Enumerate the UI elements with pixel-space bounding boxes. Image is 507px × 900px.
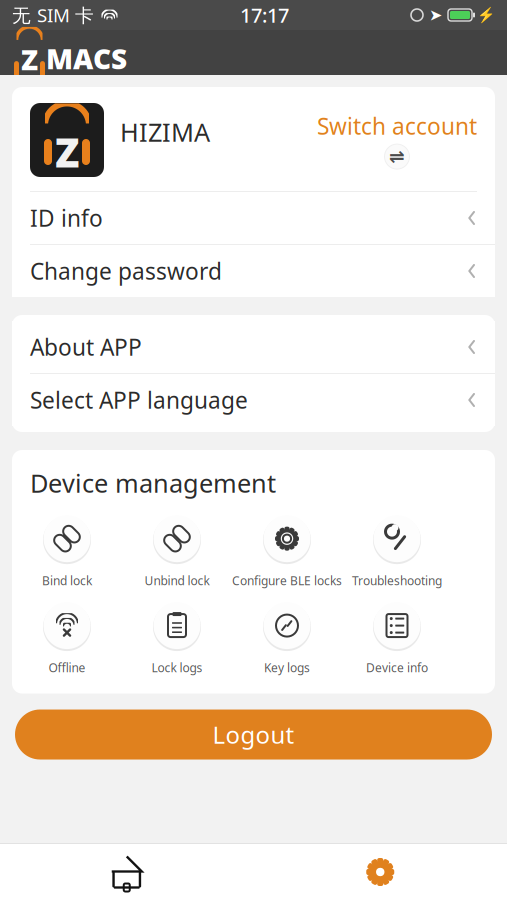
staticText: Logout bbox=[212, 719, 294, 750]
staticText: Key logs bbox=[264, 660, 310, 675]
button[interactable]: Change password bbox=[12, 245, 495, 297]
button[interactable]: Device info bbox=[342, 601, 452, 675]
staticText: Offline bbox=[48, 660, 85, 675]
staticText: Z bbox=[55, 125, 79, 178]
staticText: ➤ bbox=[429, 6, 442, 24]
button[interactable]: Troubleshooting bbox=[342, 514, 452, 588]
staticText: ⇌ bbox=[389, 146, 405, 167]
staticText: About APP bbox=[30, 332, 142, 362]
staticText: ID info bbox=[30, 203, 103, 233]
staticText: Select APP language bbox=[30, 385, 248, 415]
staticText: Z bbox=[21, 41, 38, 78]
button[interactable]: Key logs bbox=[232, 601, 342, 675]
staticText: Configure BLE locks bbox=[232, 573, 342, 588]
staticText: ⚡ bbox=[477, 7, 495, 23]
staticText: Device management bbox=[30, 466, 276, 500]
button[interactable]: Select APP language bbox=[12, 374, 495, 426]
button[interactable] bbox=[0, 844, 253, 900]
button[interactable]: About APP bbox=[12, 321, 495, 374]
button[interactable]: Switch account bbox=[317, 103, 477, 169]
staticText: Change password bbox=[30, 256, 222, 286]
staticText: 17:17 bbox=[240, 2, 289, 28]
staticText: Bind lock bbox=[42, 573, 92, 588]
button[interactable]: Unbind lock bbox=[122, 514, 232, 588]
staticText: Lock logs bbox=[151, 660, 202, 675]
staticText: 无 SIM 卡 bbox=[12, 3, 94, 27]
button[interactable]: Offline bbox=[12, 601, 122, 675]
staticText: Switch account bbox=[317, 111, 477, 141]
button[interactable]: Configure BLE locks bbox=[232, 514, 342, 588]
button[interactable]: ID info bbox=[12, 192, 495, 245]
button[interactable]: Logout bbox=[15, 709, 492, 759]
staticText: Troubleshooting bbox=[352, 573, 442, 588]
staticText: HIZIMA bbox=[120, 115, 210, 149]
button[interactable]: Bind lock bbox=[12, 514, 122, 588]
button[interactable]: Lock logs bbox=[122, 601, 232, 675]
staticText: MACS bbox=[46, 40, 127, 77]
staticText: Unbind lock bbox=[144, 573, 209, 588]
button[interactable] bbox=[253, 844, 507, 900]
staticText: Device info bbox=[366, 660, 428, 675]
